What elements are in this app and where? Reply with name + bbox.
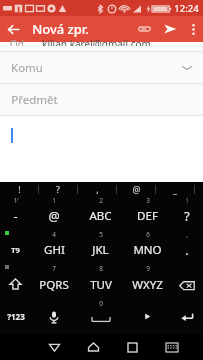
button[interactable]: Next [124, 299, 171, 334]
staticText: 4 [52, 230, 56, 239]
staticText: 8 [99, 264, 103, 273]
staticText: ? [184, 208, 190, 225]
staticText: Nová zpr. [32, 20, 89, 38]
staticText: @ [132, 183, 141, 195]
button[interactable]: 8 [77, 264, 124, 299]
button[interactable]: _ [156, 182, 194, 196]
button[interactable]: 0 [77, 299, 124, 334]
staticText: _ [173, 183, 177, 195]
staticText: Komu [11, 60, 43, 76]
staticText: 0 [99, 299, 103, 308]
staticText: @ [48, 208, 60, 225]
other: Space [91, 315, 111, 323]
staticText: , [96, 183, 99, 195]
staticText: ! [186, 196, 188, 205]
staticText: 5 [99, 230, 103, 239]
staticText: ! [18, 183, 21, 195]
staticText: ABC [89, 208, 112, 224]
staticText: . [185, 242, 189, 259]
button[interactable]: 2 [77, 196, 124, 230]
staticText: JKL [92, 242, 109, 258]
button[interactable]: , [171, 230, 203, 264]
staticText: WXYZ [132, 277, 163, 293]
button[interactable]: @ [117, 182, 155, 196]
button[interactable]: ?123 [0, 299, 31, 334]
staticText: PQRS [39, 277, 69, 293]
button[interactable]: Shift [0, 264, 31, 299]
staticText: ?123 [7, 311, 25, 322]
button[interactable]: Delete [171, 264, 203, 299]
staticText: 12:24 [174, 2, 199, 15]
button[interactable]: , [78, 182, 116, 196]
button[interactable]: 5 [77, 230, 124, 264]
staticText: 1 [52, 196, 56, 205]
staticText: · [15, 196, 17, 204]
staticText: 2 [99, 196, 103, 205]
staticText: DEF [137, 208, 158, 224]
button[interactable]: Recent apps [113, 334, 152, 360]
button[interactable]: ! [0, 182, 38, 196]
staticText: Od [10, 37, 24, 46]
staticText: MNO [133, 242, 162, 258]
staticText: , [186, 230, 188, 239]
button[interactable]: 1 [31, 196, 77, 230]
button[interactable]: More options [183, 19, 203, 39]
staticText: GHI [44, 242, 65, 258]
button[interactable]: Back [0, 16, 26, 42]
button[interactable]: ! [171, 196, 203, 230]
button[interactable]: Komu [0, 52, 203, 83]
button[interactable]: ? [39, 182, 77, 196]
button[interactable]: 3 [124, 196, 171, 230]
other: Enter [180, 311, 194, 323]
staticText: 1' [13, 196, 19, 205]
button[interactable]: Attach [131, 16, 157, 42]
staticText: T9 [11, 245, 20, 255]
other: Shift [9, 278, 22, 291]
staticText: TUV [90, 277, 112, 293]
button[interactable]: Home [74, 334, 113, 360]
button[interactable]: Send [157, 16, 183, 42]
staticText: ? [56, 183, 60, 195]
button[interactable]: 1' [0, 196, 31, 230]
other: Delete [179, 277, 195, 291]
button[interactable] [0, 116, 203, 160]
button[interactable]: Voice input [31, 299, 77, 334]
staticText: kilian.karel@gmail.com [42, 37, 151, 46]
button[interactable]: Předmět [0, 84, 203, 115]
other: Next [143, 312, 152, 321]
button[interactable]: 7 [31, 264, 77, 299]
button[interactable]: T9 mode [0, 230, 31, 264]
staticText: 7 [52, 264, 56, 273]
button[interactable]: 6 [124, 230, 171, 264]
staticText: Předmět [11, 92, 58, 108]
button[interactable]: Enter [171, 299, 203, 334]
other: Voice input [49, 310, 59, 324]
other: T9 mode [11, 245, 20, 255]
staticText: 9 [146, 264, 150, 273]
button[interactable]: Hide keyboard [152, 334, 191, 360]
staticText: - [13, 208, 18, 225]
button[interactable]: 4 [31, 230, 77, 264]
button[interactable]: Back [35, 334, 74, 360]
staticText: 6 [146, 230, 150, 239]
staticText: 3 [146, 196, 150, 205]
button[interactable]: 9 [124, 264, 171, 299]
